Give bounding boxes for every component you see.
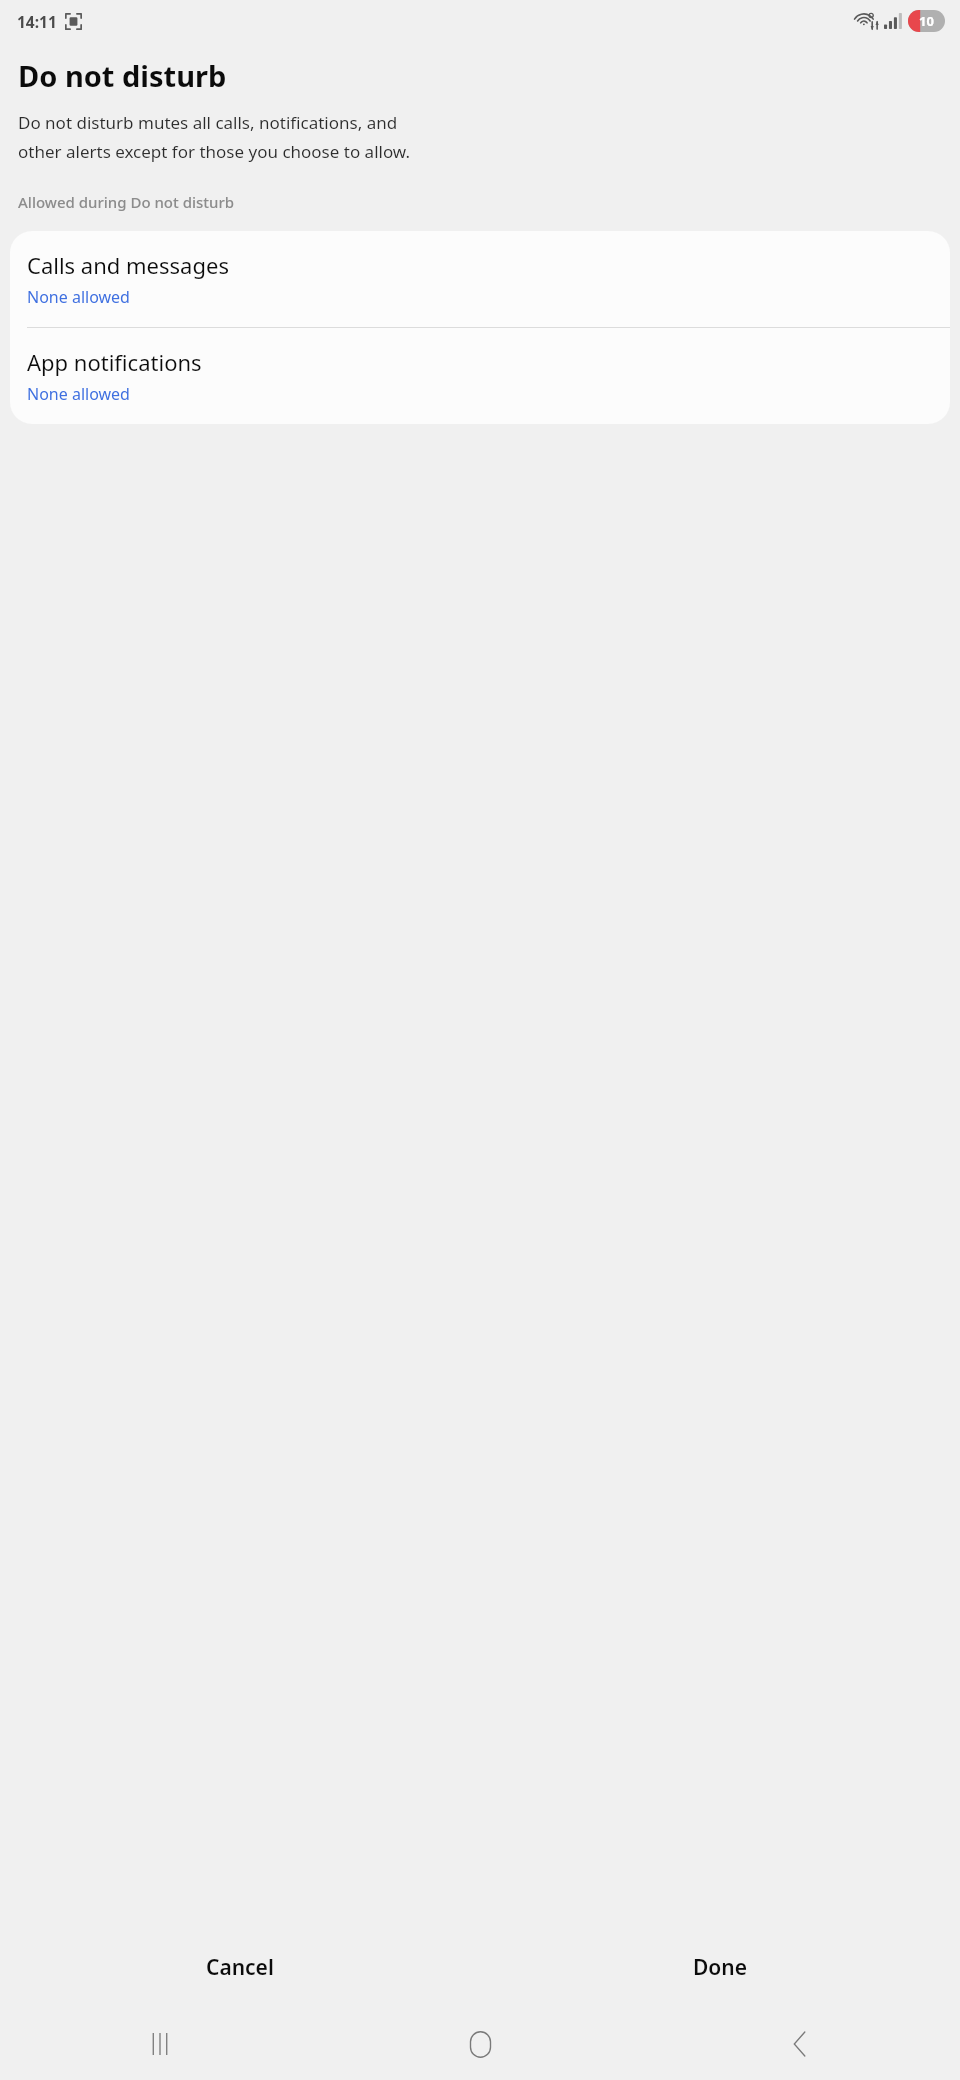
button[interactable]: Done [480,1926,960,2008]
staticText: 14:11 [17,11,57,32]
button[interactable]: Calls and messages [10,231,950,327]
staticText: None allowed [27,383,130,405]
staticText: Cancel [206,1953,274,1982]
staticText: App notifications [27,347,202,377]
button[interactable]: App notifications [10,328,950,424]
staticText: Done [693,1953,748,1982]
staticText: Do not disturb [18,56,227,95]
button[interactable]: Recent apps [0,2008,320,2080]
button[interactable]: Home [320,2008,640,2080]
button[interactable]: Cancel [0,1926,480,2008]
button[interactable]: Back [640,2008,960,2080]
staticText: Allowed during Do not disturb [18,192,235,212]
staticText: Calls and messages [27,250,229,280]
staticText: None allowed [27,286,130,308]
staticText: 10 [919,12,934,30]
staticText: other alerts except for those you choose… [18,140,411,163]
staticText: Do not disturb mutes all calls, notifica… [18,111,398,134]
